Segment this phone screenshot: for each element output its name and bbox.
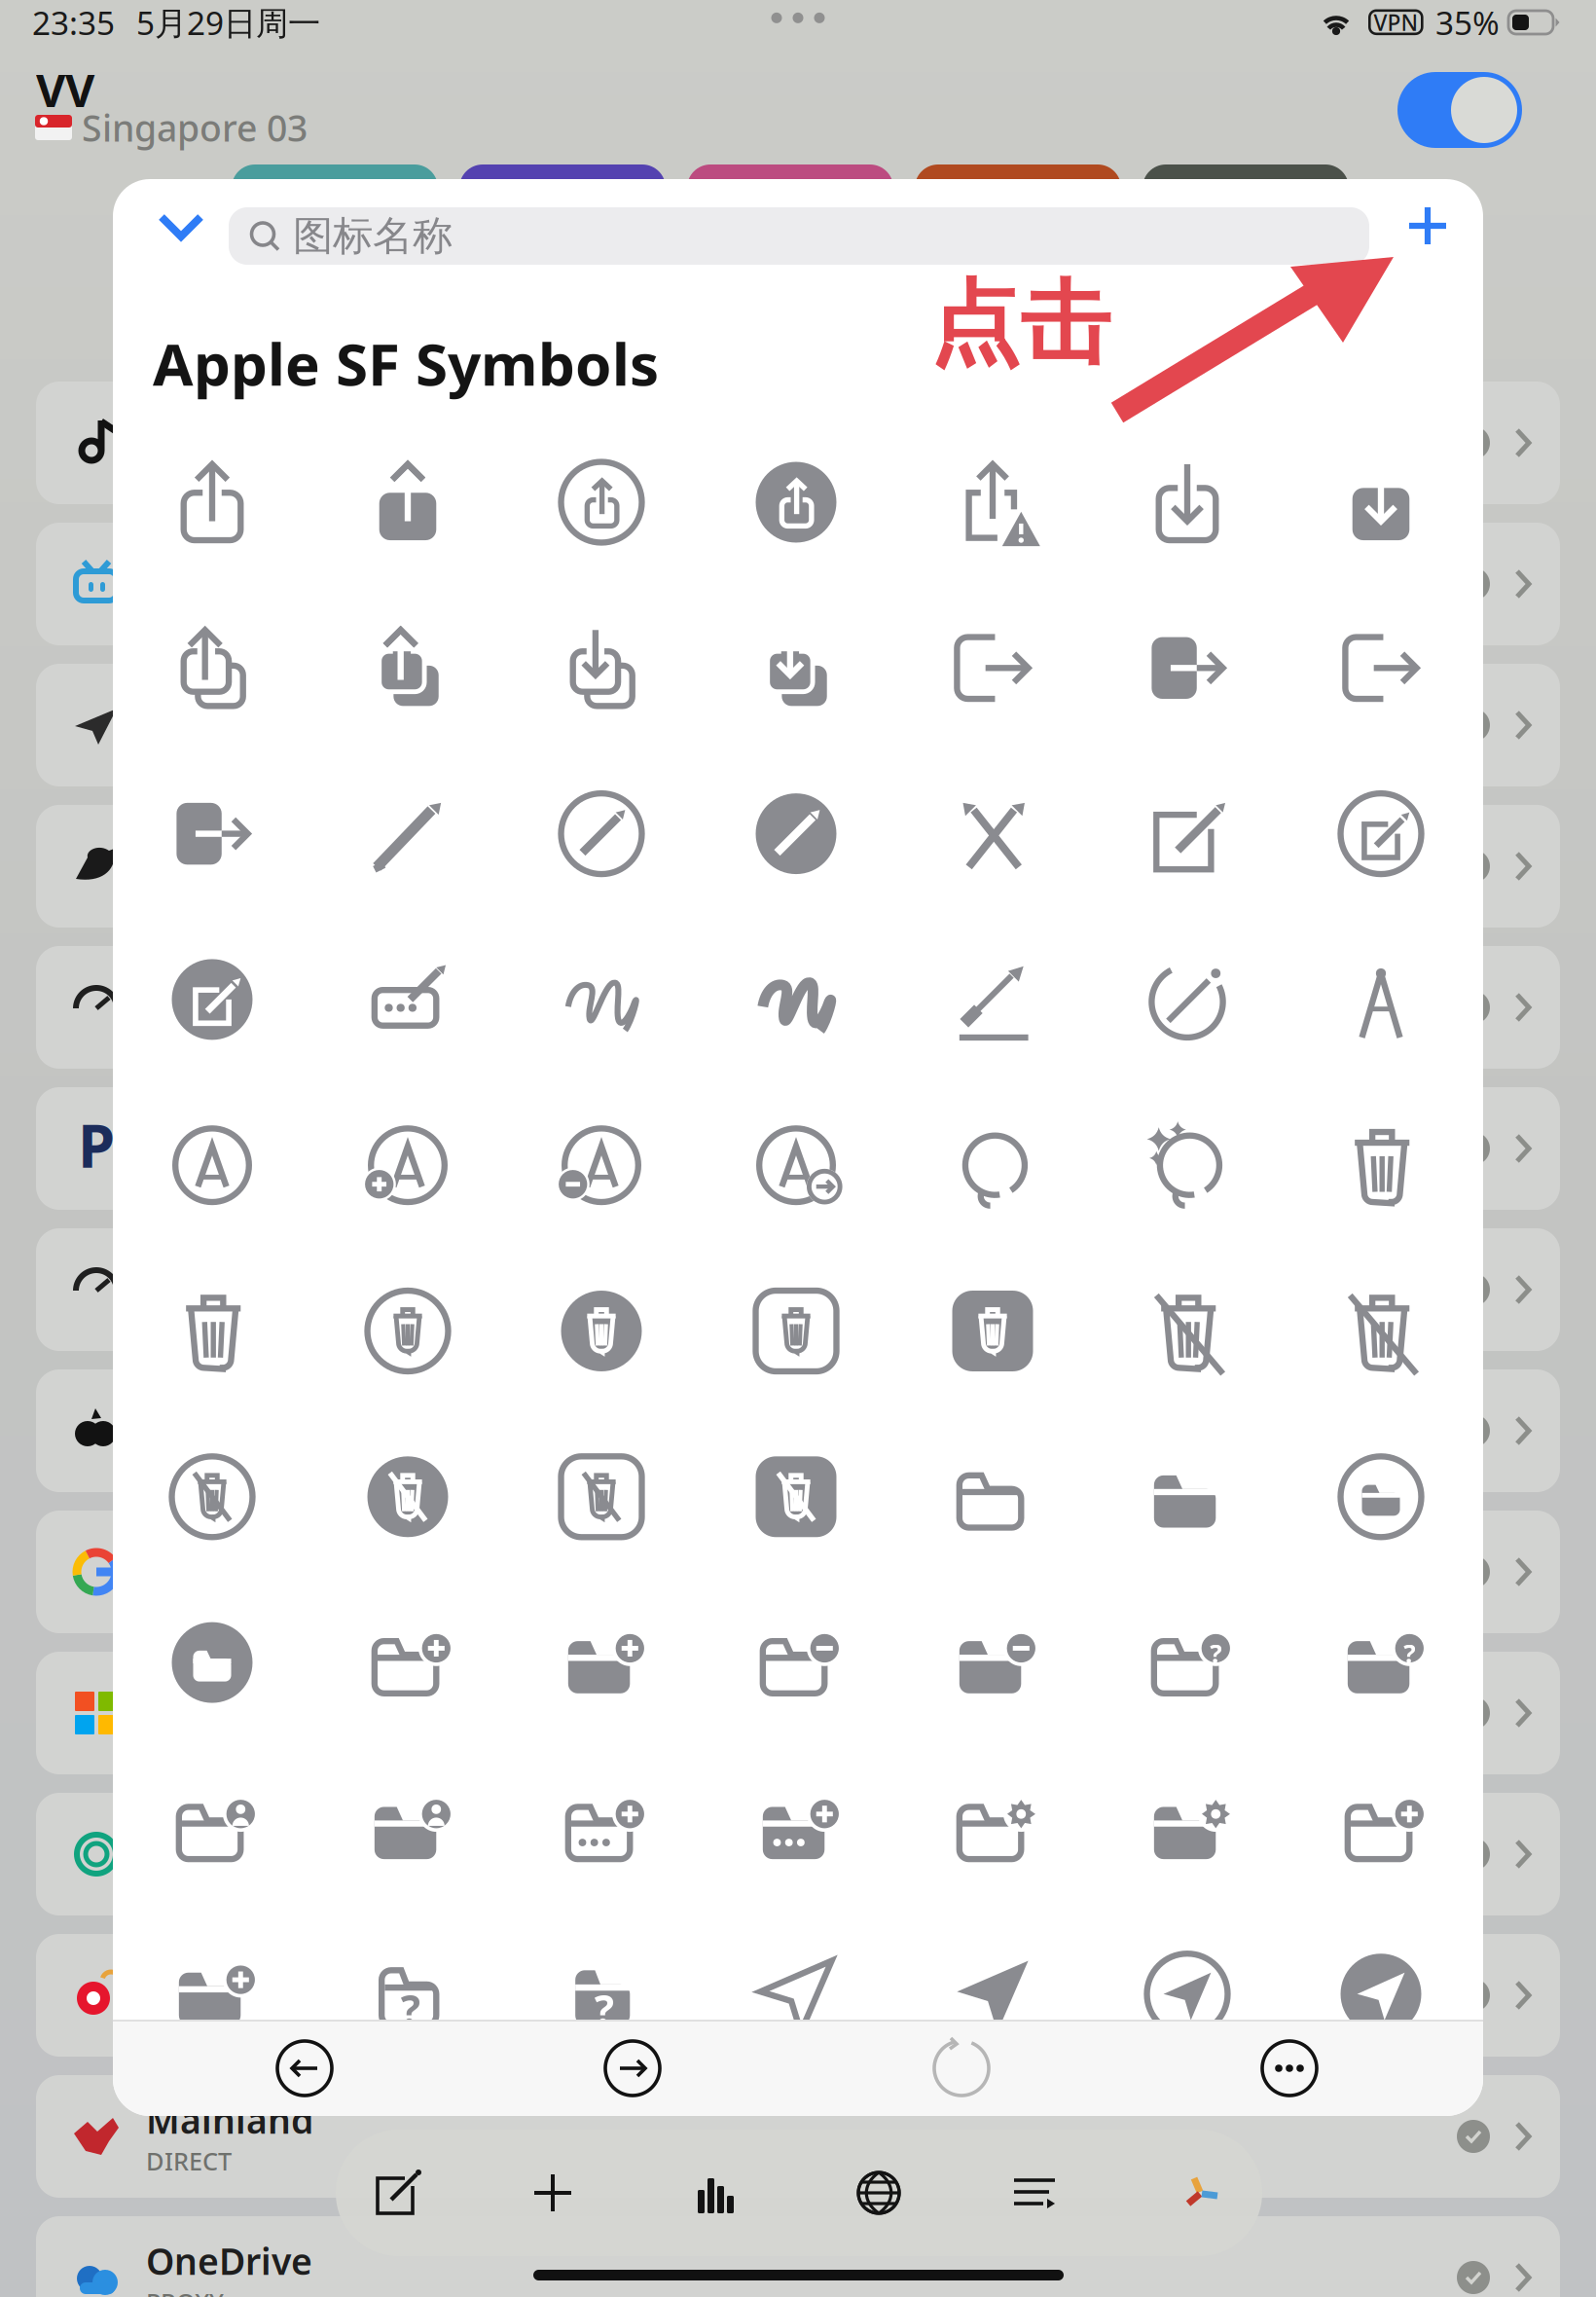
button[interactable]: square.pencil.circle.fill — [167, 955, 257, 1044]
button[interactable]: compose — [368, 2165, 424, 2221]
button[interactable]: Apple — [36, 1369, 1560, 1492]
button[interactable]: exit.fill — [1143, 623, 1232, 713]
button[interactable]: VPN enabled — [1397, 72, 1522, 148]
button[interactable]: Mainland — [36, 2075, 1560, 2198]
button[interactable]: trash.square.fill — [948, 1286, 1037, 1376]
button[interactable]: share.stack — [167, 623, 257, 713]
button[interactable]: paperplane.circle — [1143, 1949, 1232, 2039]
button[interactable]: pencil — [363, 789, 453, 879]
button[interactable]: highlighter — [948, 955, 1037, 1044]
button[interactable]: folder.fill — [1143, 1452, 1232, 1542]
button[interactable]: signature.bold — [751, 955, 841, 1044]
button[interactable]: compass — [1336, 955, 1426, 1044]
button[interactable]: down — [1143, 457, 1232, 547]
button[interactable]: pencil.tip.crop — [1143, 955, 1232, 1044]
button[interactable]: square.pencil — [1143, 789, 1232, 879]
staticText: 图标名称 — [293, 211, 453, 261]
button[interactable]: trash.slash — [1143, 1286, 1232, 1376]
button[interactable]: Google — [36, 1511, 1560, 1633]
button[interactable]: folder — [948, 1452, 1037, 1542]
button[interactable]: trash.slash.square.fill — [751, 1452, 841, 1542]
button[interactable]: paperplane — [751, 1949, 841, 2039]
button[interactable]: Microsoft — [36, 1652, 1560, 1774]
button[interactable]: folder.dot.plus.fill — [751, 1783, 841, 1873]
button[interactable]: paperplane.circle.fill — [1336, 1949, 1426, 2039]
button[interactable]: down.stack — [557, 623, 646, 713]
button[interactable]: folder.gear.fill — [1143, 1783, 1232, 1873]
button[interactable]: more — [1254, 2033, 1324, 2103]
button[interactable]: trash.slash — [1336, 1286, 1426, 1376]
button[interactable]: Bilibili — [36, 523, 1560, 645]
button[interactable]: pencil.tip.plus — [363, 1120, 453, 1210]
button[interactable]: pencil.tip.arrow — [751, 1120, 841, 1210]
button[interactable]: folder.circle — [1336, 1452, 1426, 1542]
button[interactable]: Speed — [36, 1228, 1560, 1351]
button[interactable]: chart — [690, 2165, 746, 2221]
button[interactable]: folder.plus — [363, 1618, 453, 1707]
button[interactable]: folder.question.fill — [557, 1949, 646, 2039]
button[interactable]: pencil.slash — [948, 789, 1037, 879]
button[interactable]: down.stack.fill — [751, 623, 841, 713]
button[interactable]: pencil.tip.minus — [557, 1120, 646, 1210]
button[interactable]: folder.minus.fill — [948, 1618, 1037, 1707]
button[interactable]: reload — [926, 2033, 997, 2103]
button[interactable]: folder.minus — [751, 1618, 841, 1707]
button[interactable]: plus — [525, 2165, 581, 2221]
button[interactable]: exit — [948, 623, 1037, 713]
staticText: ? — [402, 1984, 418, 2029]
button[interactable]: share.warn — [948, 457, 1037, 547]
button[interactable]: Speedtest — [36, 946, 1560, 1069]
button[interactable]: share.fill — [363, 457, 453, 547]
button[interactable]: Weibo — [36, 1934, 1560, 2057]
button[interactable]: folder.circle.fill — [167, 1618, 257, 1707]
button[interactable]: folder.dot.plus — [557, 1783, 646, 1873]
button[interactable]: pencil.circle — [557, 789, 646, 879]
button[interactable]: folder.badge.plus.fill — [167, 1949, 257, 2039]
button[interactable]: square.pencil.circle — [1336, 789, 1426, 879]
button[interactable]: folder.badge.plus — [1336, 1783, 1426, 1873]
button[interactable]: TikTok — [36, 382, 1560, 504]
button[interactable]: exit — [1336, 623, 1426, 713]
button[interactable]: trash.slash.square — [557, 1452, 646, 1542]
button[interactable]: lasso — [948, 1120, 1037, 1210]
button[interactable]: folder.plus.fill — [557, 1618, 646, 1707]
button[interactable]: Telegram — [36, 664, 1560, 786]
button[interactable]: Add — [1378, 176, 1477, 275]
button[interactable]: trash — [1336, 1120, 1426, 1210]
button[interactable]: folder.gear — [948, 1783, 1037, 1873]
button[interactable]: share.stack.fill — [363, 623, 453, 713]
button[interactable]: folder.person — [167, 1783, 257, 1873]
button[interactable]: back — [270, 2033, 340, 2103]
button[interactable]: trash — [167, 1286, 257, 1376]
button[interactable]: OneDrive — [36, 2216, 1560, 2297]
staticText: PROXY — [146, 2286, 224, 2297]
button[interactable]: OpenAI — [36, 1793, 1560, 1915]
button[interactable]: trash.slash.circle.fill — [363, 1452, 453, 1542]
button[interactable]: signature — [557, 955, 646, 1044]
button[interactable]: share.circle.fill — [751, 457, 841, 547]
button[interactable]: Collapse — [134, 176, 228, 277]
button[interactable]: fwd — [598, 2033, 668, 2103]
button[interactable]: exit.fill — [167, 789, 257, 879]
button[interactable]: P — [36, 1087, 1560, 1210]
button[interactable]: pencil.tip — [167, 1120, 257, 1210]
button[interactable]: globe — [851, 2165, 907, 2221]
button[interactable]: logo — [1171, 2165, 1227, 2221]
button[interactable]: trash.square — [751, 1286, 841, 1376]
button[interactable]: tablet.pencil — [363, 955, 453, 1044]
button[interactable]: trash.circle — [363, 1286, 453, 1376]
button[interactable]: paperplane.fill — [948, 1949, 1037, 2039]
button[interactable]: folder.q — [1143, 1618, 1232, 1707]
button[interactable]: Twitter — [36, 805, 1560, 928]
button[interactable]: lasso.sparkle — [1143, 1120, 1232, 1210]
button[interactable]: share.circle — [557, 457, 646, 547]
button[interactable]: folder.person.fill — [363, 1783, 453, 1873]
button[interactable]: trash.circle.fill — [557, 1286, 646, 1376]
button[interactable]: folder.question — [363, 1949, 453, 2039]
button[interactable]: folder.q.fill — [1336, 1618, 1426, 1707]
button[interactable]: pencil.circle.fill — [751, 789, 841, 879]
button[interactable]: list — [1006, 2165, 1063, 2221]
button[interactable]: down.fill — [1336, 457, 1426, 547]
button[interactable]: share — [167, 457, 257, 547]
button[interactable]: trash.slash.circle — [167, 1452, 257, 1542]
